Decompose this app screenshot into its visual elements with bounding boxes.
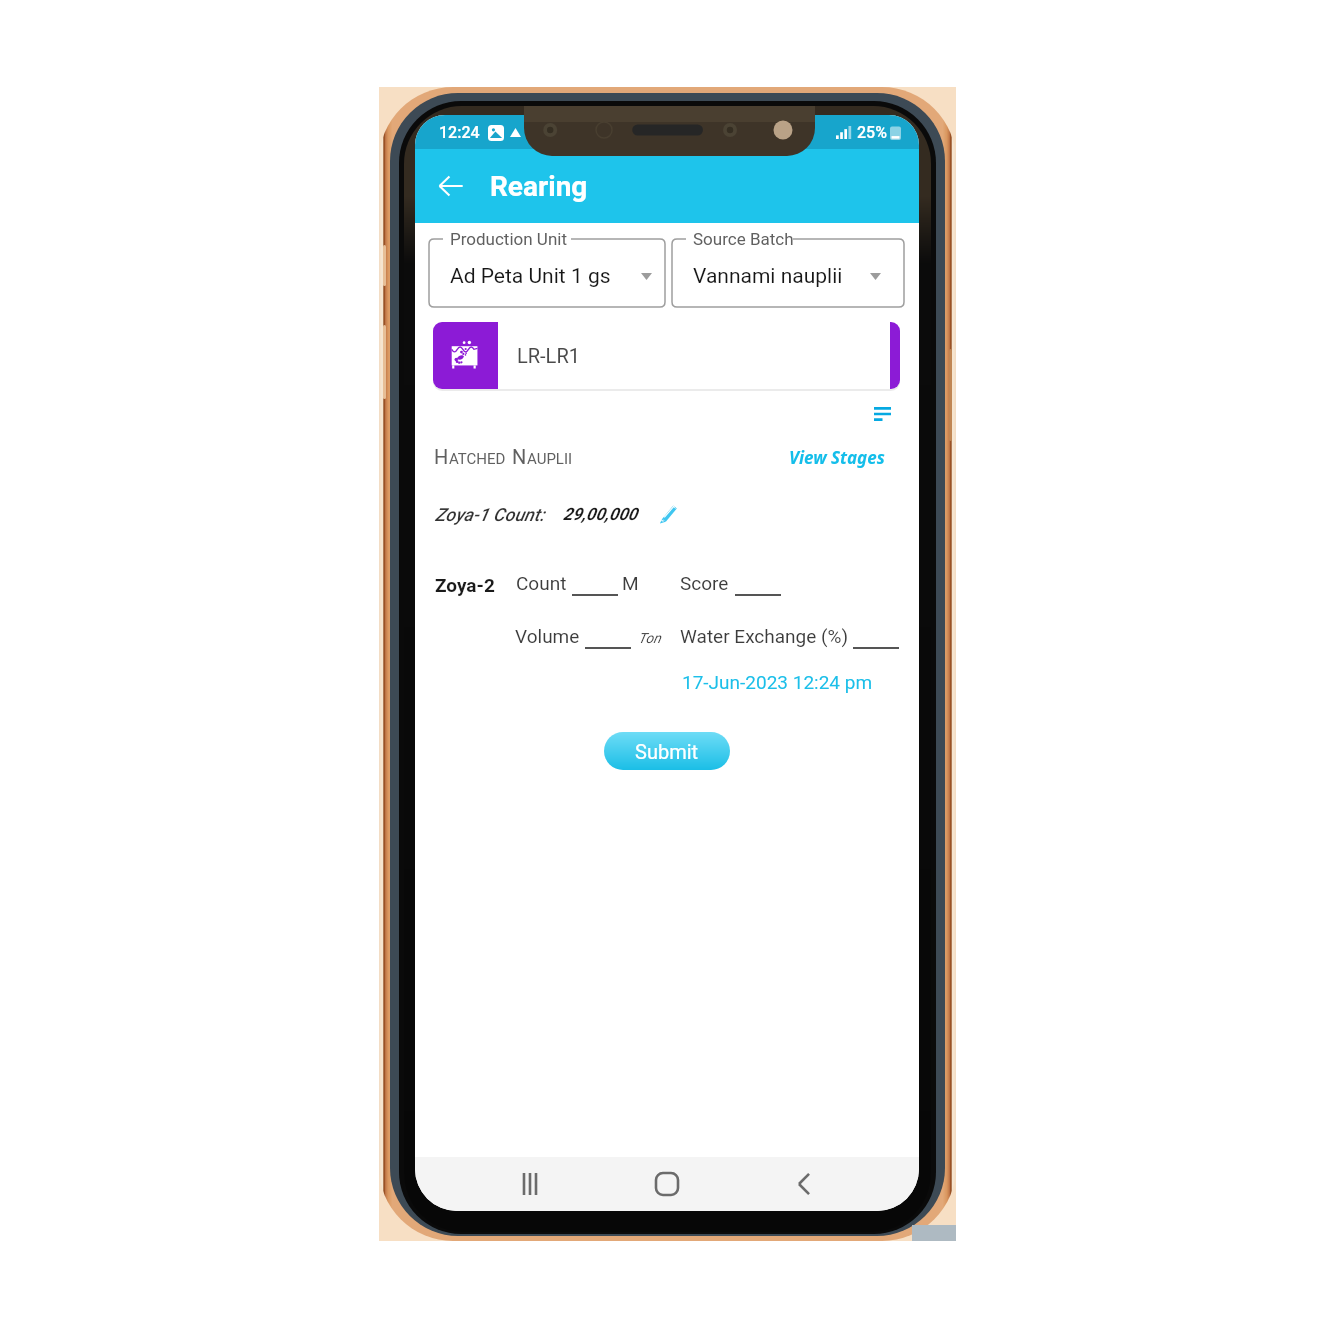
staticText: Ad Peta Unit 1 gs [450,264,611,289]
button[interactable]: Back [429,164,473,208]
staticText: Water Exchange (%) [680,625,849,647]
button[interactable]: Recents [508,1162,552,1206]
button[interactable]: Submit [604,732,730,770]
staticText: AUPLII [527,450,573,468]
staticText: 12:24 [439,123,480,142]
staticText: Volume [515,625,580,647]
button[interactable]: Source Batch [672,226,904,307]
button[interactable]: H [434,445,573,468]
staticText: Rearing [490,170,588,203]
button[interactable]: 17-Jun-2023 12:24 pm [682,671,873,693]
staticText: Vannami nauplii [693,264,843,289]
staticText: Production Unit [450,229,567,249]
staticText: View Stages [789,446,885,469]
button[interactable]: Production Unit [429,226,665,307]
button[interactable]: Edit [655,500,681,526]
button[interactable]: Sort [864,397,900,431]
button[interactable]: LR-LR1 [433,322,900,389]
staticText: ATCHED [449,450,506,468]
staticText: Zoya-2 [435,574,495,596]
staticText: M [622,572,639,594]
staticText: 29,00,000 [563,504,638,524]
button[interactable]: Back [782,1162,826,1206]
staticText: 17-Jun-2023 12:24 pm [682,671,873,693]
staticText: Submit [635,740,699,763]
staticText: Ton [638,630,661,646]
staticText: Source Batch [693,229,794,249]
staticText: Zoya-1 Count: [435,504,545,525]
staticText: H [434,445,449,468]
staticText: 25% [857,123,887,142]
staticText: N [512,445,527,468]
button[interactable]: Home [645,1162,689,1206]
staticText: LR-LR1 [517,344,580,367]
staticText: Count [516,572,567,594]
staticText: Score [680,572,729,594]
button[interactable]: View Stages [789,446,885,469]
